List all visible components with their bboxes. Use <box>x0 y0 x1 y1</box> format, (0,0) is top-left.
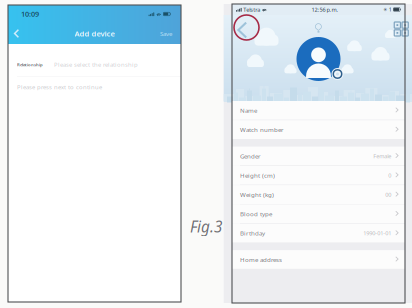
staticText: Home address <box>240 255 282 264</box>
button[interactable]: Weight (kg) <box>232 185 405 204</box>
staticText: 10:09 <box>21 9 39 19</box>
staticText: Weight (kg) <box>240 190 274 199</box>
staticText: Add device <box>74 28 114 39</box>
staticText: Name <box>240 106 257 115</box>
button[interactable]: Back <box>8 25 27 42</box>
staticText: Blood type <box>240 210 272 218</box>
button[interactable]: Birthday <box>232 224 405 243</box>
staticText: 0 <box>388 171 391 179</box>
button[interactable]: Relationship <box>8 53 181 76</box>
staticText: Please press next to continue <box>17 83 102 91</box>
staticText: 1990-01-01 <box>363 229 391 237</box>
staticText: Height (cm) <box>240 171 275 179</box>
staticText: Gender <box>240 152 261 160</box>
button[interactable]: Watch number <box>232 120 405 139</box>
staticText: Fig.3 <box>190 216 222 237</box>
button[interactable]: Blood type <box>232 204 405 223</box>
staticText: Female <box>373 152 391 160</box>
staticText: 1 <box>389 6 392 13</box>
staticText: Relationship <box>17 62 43 67</box>
staticText: ✳ <box>383 7 387 12</box>
staticText: Watch number <box>240 125 284 134</box>
staticText: 00 <box>385 191 391 198</box>
button[interactable]: Home address <box>232 250 405 269</box>
staticText: Save <box>160 29 172 38</box>
staticText: Please select the relationship <box>54 60 138 68</box>
button[interactable]: Back <box>224 15 255 43</box>
button[interactable]: Height (cm) <box>232 166 405 185</box>
staticText: Telstra <box>243 6 260 13</box>
staticText: Birthday <box>240 229 265 237</box>
button[interactable]: Save <box>151 24 181 43</box>
button[interactable]: Scan QR code <box>387 16 412 42</box>
button[interactable]: Gender <box>232 147 405 165</box>
staticText: 12:56 p.m. <box>312 6 339 13</box>
button[interactable]: Name <box>232 101 405 120</box>
